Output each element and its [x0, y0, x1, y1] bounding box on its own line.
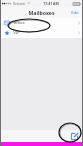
staticText: VIP — [13, 30, 20, 36]
button[interactable]: Edit — [70, 9, 80, 17]
button[interactable]: VIP — [0, 28, 83, 38]
staticText: Verizon — [13, 1, 25, 6]
button[interactable]: Compose — [70, 132, 79, 141]
staticText: 11:41 AM — [43, 1, 59, 6]
staticText: Inbox — [13, 20, 25, 26]
button[interactable]: Inbox — [0, 18, 83, 28]
staticText: Mailboxes — [28, 9, 55, 16]
staticText: Edit — [71, 10, 79, 16]
